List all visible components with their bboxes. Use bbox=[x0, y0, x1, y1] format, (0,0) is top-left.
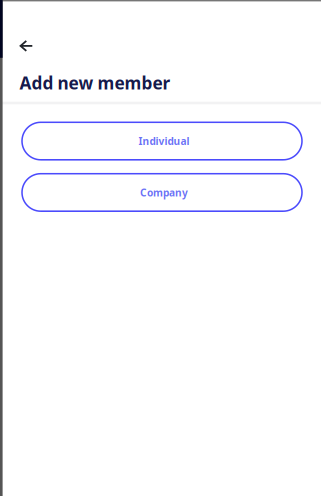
staticText: Add new member bbox=[20, 71, 171, 94]
button[interactable]: Individual bbox=[22, 122, 302, 160]
button[interactable]: Company bbox=[22, 174, 302, 211]
staticText: Company bbox=[140, 185, 188, 199]
staticText: Individual bbox=[138, 134, 189, 148]
button[interactable]: Back bbox=[12, 32, 41, 60]
